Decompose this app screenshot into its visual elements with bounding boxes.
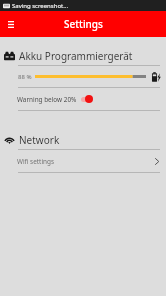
staticText: Akku Programmiergerät: [19, 49, 133, 63]
staticText: 88 %: [18, 73, 32, 81]
button[interactable]: Warning below 20%: [0, 88, 166, 110]
staticText: Wifi settings: [17, 157, 54, 166]
button[interactable]: Warning below 20% toggle: [81, 88, 93, 110]
staticText: Warning below 20%: [17, 95, 77, 104]
staticText: Network: [19, 133, 60, 147]
button[interactable]: 88 %: [0, 66, 166, 87]
staticText: Settings: [64, 17, 103, 31]
staticText: Saving screenshot...: [12, 2, 69, 10]
button[interactable]: Wifi settings: [0, 150, 166, 172]
button[interactable]: Open navigation menu: [0, 11, 21, 37]
